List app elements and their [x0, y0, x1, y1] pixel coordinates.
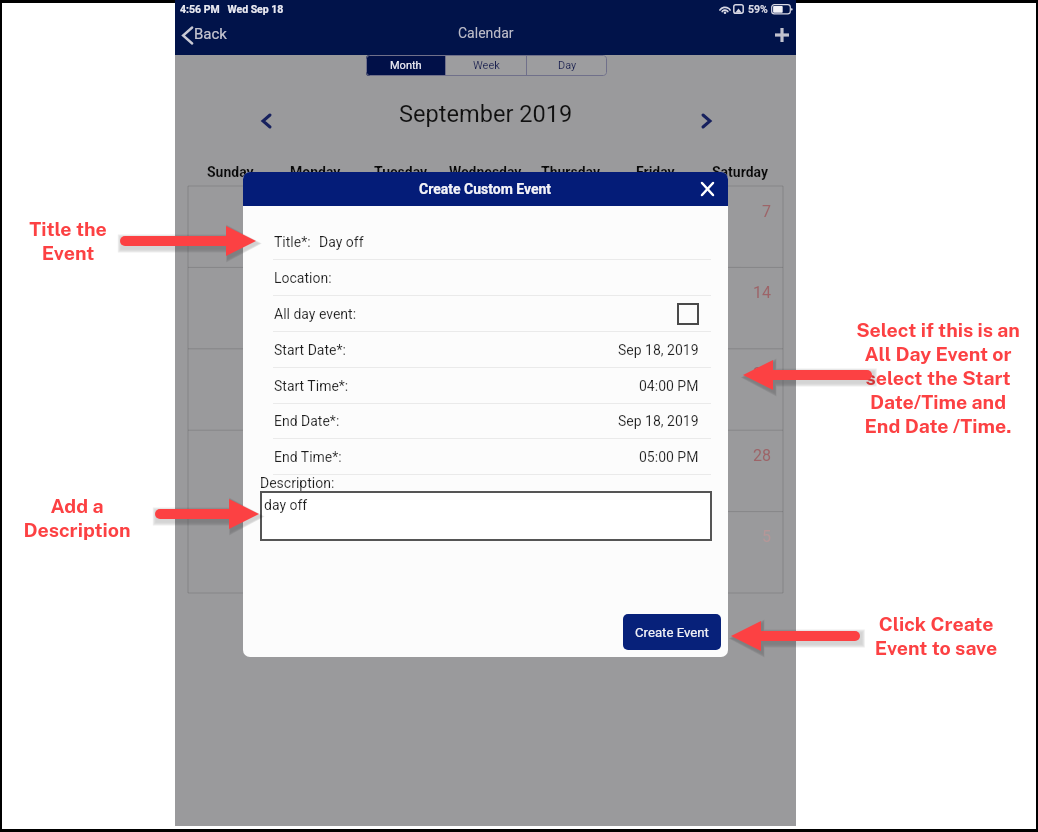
staticText: Create Custom Event	[419, 181, 552, 197]
staticText: All day event:	[274, 306, 357, 322]
staticText: Day	[558, 59, 577, 72]
button[interactable]: End Date*:	[243, 403, 728, 439]
staticText: 59%	[748, 3, 768, 15]
staticText: Sunday	[207, 164, 254, 180]
button[interactable]: Add event	[767, 20, 796, 49]
staticText: Day off	[319, 234, 364, 250]
staticText: 05:00 PM	[639, 449, 699, 465]
button[interactable]: day off	[260, 491, 712, 541]
button[interactable]: Month	[366, 55, 445, 76]
staticText: Sep 18, 2019	[618, 413, 699, 429]
staticText: Wednesday	[449, 164, 522, 180]
staticText: Calendar	[458, 25, 514, 41]
staticText: Month	[390, 59, 422, 72]
staticText: 4:56 PM Wed Sep 18	[180, 3, 284, 15]
staticText: Create Event	[635, 625, 709, 640]
staticText: Saturday	[712, 164, 769, 180]
button[interactable]: Start Date*:	[243, 332, 728, 368]
staticText: 7	[762, 202, 771, 221]
staticText: 21	[753, 364, 771, 383]
button[interactable]: Start Time*:	[243, 368, 728, 404]
button[interactable]: Title*:	[243, 224, 728, 260]
staticText: 14	[753, 283, 771, 302]
staticText: day off	[264, 497, 308, 513]
button[interactable]: Location:	[243, 260, 728, 296]
staticText: Click Create Event to save	[874, 612, 998, 659]
staticText: Add a Description	[15, 494, 139, 541]
staticText: 04:00 PM	[639, 378, 699, 394]
staticText: Week	[473, 59, 500, 72]
staticText: Title*:	[274, 234, 311, 250]
staticText: Start Date*:	[274, 342, 346, 358]
staticText: 5	[762, 527, 771, 546]
button[interactable]: All day event:	[243, 296, 728, 332]
staticText: Location:	[274, 270, 332, 286]
staticText: Description:	[260, 475, 335, 491]
staticText: Sep 18, 2019	[618, 342, 699, 358]
staticText: End Time*:	[274, 449, 342, 465]
staticText: Monday	[290, 164, 341, 180]
button[interactable]: Previous month	[251, 106, 281, 136]
staticText: Title the Event	[6, 217, 130, 264]
staticText: Friday	[636, 164, 675, 180]
button[interactable]: Create Event	[623, 614, 721, 650]
button[interactable]: Back	[181, 24, 227, 46]
staticText: Thursday	[541, 164, 600, 180]
button[interactable]: Next month	[691, 106, 721, 136]
staticText: September 2019	[399, 100, 573, 128]
button[interactable]: Week	[446, 55, 526, 76]
button[interactable]: End Time*:	[243, 439, 728, 475]
staticText: End Date*:	[274, 413, 340, 429]
staticText: Tuesday	[374, 164, 428, 180]
button[interactable]: Day	[527, 55, 607, 76]
button[interactable]: Close dialog	[696, 178, 718, 200]
staticText: Back	[194, 25, 227, 43]
staticText: 28	[753, 446, 771, 465]
staticText: Start Time*:	[274, 378, 349, 394]
staticText: Select if this is an All Day Event or se…	[848, 318, 1028, 437]
